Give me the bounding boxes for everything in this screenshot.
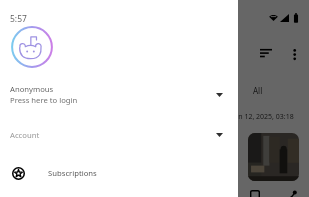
button[interactable]: Comments xyxy=(246,186,264,197)
staticText: Anonymous xyxy=(10,84,54,94)
staticText: 5:57 xyxy=(10,13,27,25)
button[interactable]: More options xyxy=(285,44,305,64)
staticText: Press here to login xyxy=(10,95,78,105)
staticText: Subscriptions xyxy=(48,168,97,178)
button[interactable]: Anonymous xyxy=(0,83,238,106)
staticText: Jun 12, 2025, 03:18 xyxy=(232,112,294,122)
button[interactable]: Profile xyxy=(11,26,53,68)
button[interactable]: Account xyxy=(0,126,238,144)
staticText: Account xyxy=(10,130,216,140)
staticText: All xyxy=(253,85,263,96)
button[interactable]: Subscriptions xyxy=(0,162,238,184)
button[interactable]: Share xyxy=(281,185,299,197)
button[interactable] xyxy=(248,133,299,181)
button[interactable]: Sort xyxy=(256,44,278,64)
